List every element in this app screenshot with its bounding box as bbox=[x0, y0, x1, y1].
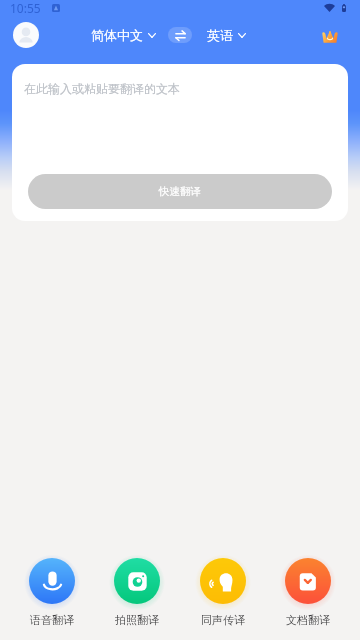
button[interactable]: Profile bbox=[13, 22, 39, 48]
button[interactable]: 简体中文 bbox=[90, 24, 157, 46]
staticText: 简体中文 bbox=[91, 27, 143, 43]
button[interactable]: 文档翻译 bbox=[266, 553, 350, 627]
staticText: 文档翻译 bbox=[286, 613, 330, 627]
staticText: 英语 bbox=[207, 27, 233, 43]
staticText: 在此输入或粘贴要翻译的文本 bbox=[24, 81, 180, 96]
button[interactable]: 同声传译 bbox=[181, 553, 265, 627]
staticText: 语音翻译 bbox=[30, 613, 74, 627]
staticText: 10:55 bbox=[10, 0, 41, 16]
button[interactable]: 英语 bbox=[206, 24, 247, 46]
staticText: 拍照翻译 bbox=[115, 613, 159, 627]
button[interactable]: 拍照翻译 bbox=[95, 553, 179, 627]
staticText: 同声传译 bbox=[201, 613, 245, 627]
button[interactable]: 语音翻译 bbox=[10, 553, 94, 627]
button[interactable]: Swap languages bbox=[168, 27, 192, 43]
button[interactable]: 快速翻译 bbox=[28, 174, 332, 209]
staticText: 快速翻译 bbox=[159, 185, 201, 198]
button[interactable]: VIP bbox=[319, 24, 341, 46]
